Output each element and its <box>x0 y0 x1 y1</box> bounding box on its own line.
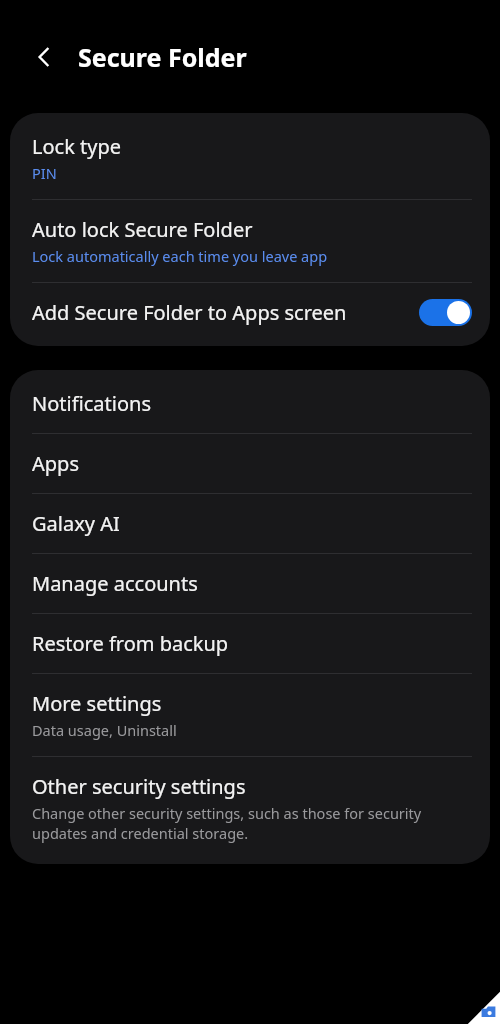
button[interactable]: Add Secure Folder to Apps screen <box>10 283 490 342</box>
staticText: Manage accounts <box>32 570 198 597</box>
staticText: More settings <box>32 690 162 717</box>
button[interactable]: Apps <box>10 434 490 493</box>
staticText: Apps <box>32 450 79 477</box>
button[interactable]: Back <box>22 35 66 79</box>
button[interactable]: Galaxy AI <box>10 494 490 553</box>
staticText: Change other security settings, such as … <box>32 803 472 844</box>
staticText: Galaxy AI <box>32 510 120 537</box>
button[interactable]: Other security settings <box>10 757 490 860</box>
button[interactable]: Notifications <box>10 374 490 433</box>
button[interactable]: Auto lock Secure Folder <box>10 200 490 282</box>
button[interactable]: Lock type <box>10 117 490 199</box>
staticText: Notifications <box>32 390 151 417</box>
staticText: Auto lock Secure Folder <box>32 216 253 243</box>
staticText: Restore from backup <box>32 630 229 657</box>
staticText: PIN <box>32 163 57 183</box>
staticText: Lock automatically each time you leave a… <box>32 246 328 266</box>
staticText: Other security settings <box>32 773 246 800</box>
staticText: Data usage, Uninstall <box>32 720 177 740</box>
staticText: Lock type <box>32 133 122 160</box>
staticText: Add Secure Folder to Apps screen <box>32 299 347 326</box>
button[interactable]: More settings <box>10 674 490 756</box>
button[interactable]: Restore from backup <box>10 614 490 673</box>
button[interactable]: Add Secure Folder to Apps screen toggle <box>419 299 472 326</box>
button[interactable]: Manage accounts <box>10 554 490 613</box>
staticText: Secure Folder <box>78 40 247 74</box>
